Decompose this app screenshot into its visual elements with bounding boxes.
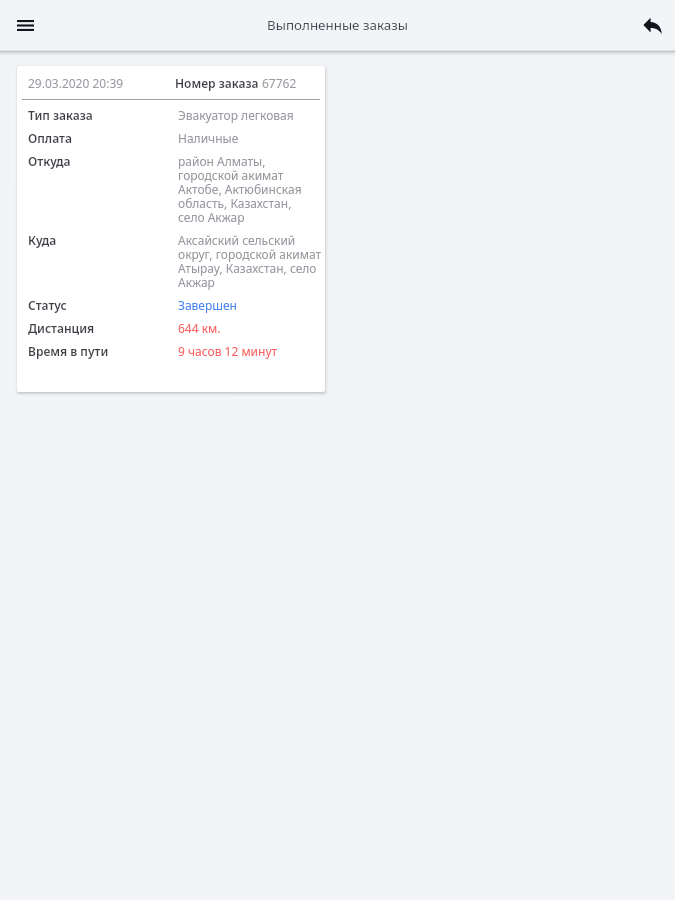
button[interactable]: Оплата — [17, 123, 325, 146]
button[interactable]: Дистанция — [17, 313, 325, 336]
staticText: Куда — [28, 234, 57, 248]
staticText: Наличные — [178, 132, 239, 146]
staticText: Статус — [28, 299, 67, 313]
staticText: 29.03.2020 20:39 — [28, 77, 124, 91]
staticText: Откуда — [28, 155, 71, 169]
staticText: Оплата — [28, 132, 72, 146]
button[interactable]: Menu — [9, 9, 41, 41]
staticText: 644 км. — [178, 322, 221, 336]
button[interactable]: Время в пути — [17, 336, 325, 359]
staticText: Аксайский сельский округ, городской аким… — [178, 234, 322, 290]
staticText: Дистанция — [28, 322, 95, 336]
button[interactable]: 29.03.2020 20:39 — [17, 66, 325, 392]
button[interactable]: Тип заказа — [17, 100, 325, 123]
button[interactable]: Back — [636, 9, 668, 41]
staticText: 9 часов 12 минут — [178, 345, 278, 359]
button[interactable]: Откуда — [17, 146, 325, 225]
staticText: Тип заказа — [28, 109, 93, 123]
staticText: Завершен — [178, 299, 237, 313]
staticText: Время в пути — [28, 345, 109, 359]
button[interactable]: Куда — [17, 225, 325, 290]
staticText: Эвакуатор легковая — [178, 109, 294, 123]
staticText: 67762 — [262, 77, 297, 91]
staticText: Выполненные заказы — [267, 16, 408, 34]
staticText: Номер заказа — [175, 77, 262, 91]
staticText: район Алматы, городской акимат Актобе, А… — [178, 155, 302, 225]
button[interactable]: Статус — [17, 290, 325, 313]
